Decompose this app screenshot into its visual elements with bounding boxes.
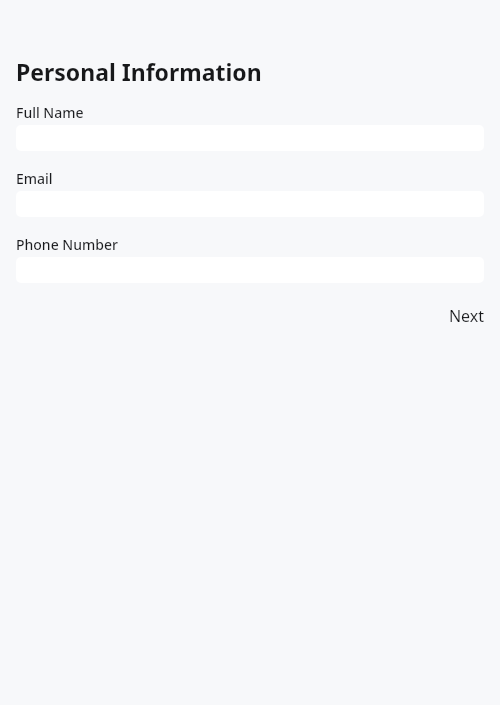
staticText: Email: [16, 169, 53, 188]
staticText: Full Name: [16, 103, 84, 122]
button[interactable]: Next: [448, 303, 484, 329]
staticText: Phone Number: [16, 235, 118, 254]
staticText: Next: [448, 305, 484, 327]
staticText: Personal Information: [16, 56, 262, 87]
